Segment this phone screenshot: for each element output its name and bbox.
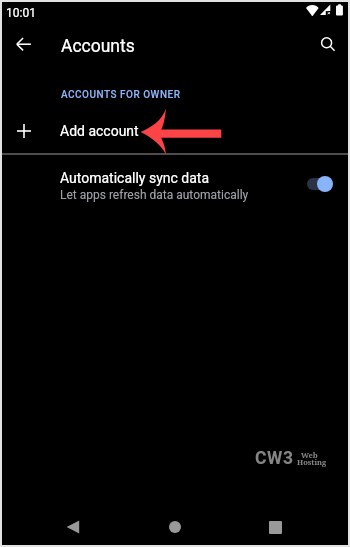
staticText: Let apps refresh data automatically <box>60 188 249 202</box>
button[interactable]: Recent apps <box>253 505 297 547</box>
staticText: Accounts <box>61 36 135 57</box>
staticText: Automatically sync data <box>60 170 210 186</box>
staticText: 10:01 <box>6 6 36 20</box>
button[interactable]: Back <box>51 505 95 547</box>
button[interactable]: Search <box>305 22 350 68</box>
button[interactable]: Navigate up <box>2 22 44 68</box>
button[interactable]: Automatically sync data <box>300 168 342 200</box>
button[interactable]: Automatically sync data <box>2 154 348 210</box>
staticText: Add account <box>60 123 139 139</box>
button[interactable]: Add account <box>2 106 348 154</box>
staticText: ACCOUNTS FOR OWNER <box>61 89 181 101</box>
staticText: Web <box>301 450 318 460</box>
staticText: Hosting <box>297 457 327 467</box>
button[interactable]: Home <box>153 505 197 547</box>
staticText: CW3 <box>255 448 294 469</box>
